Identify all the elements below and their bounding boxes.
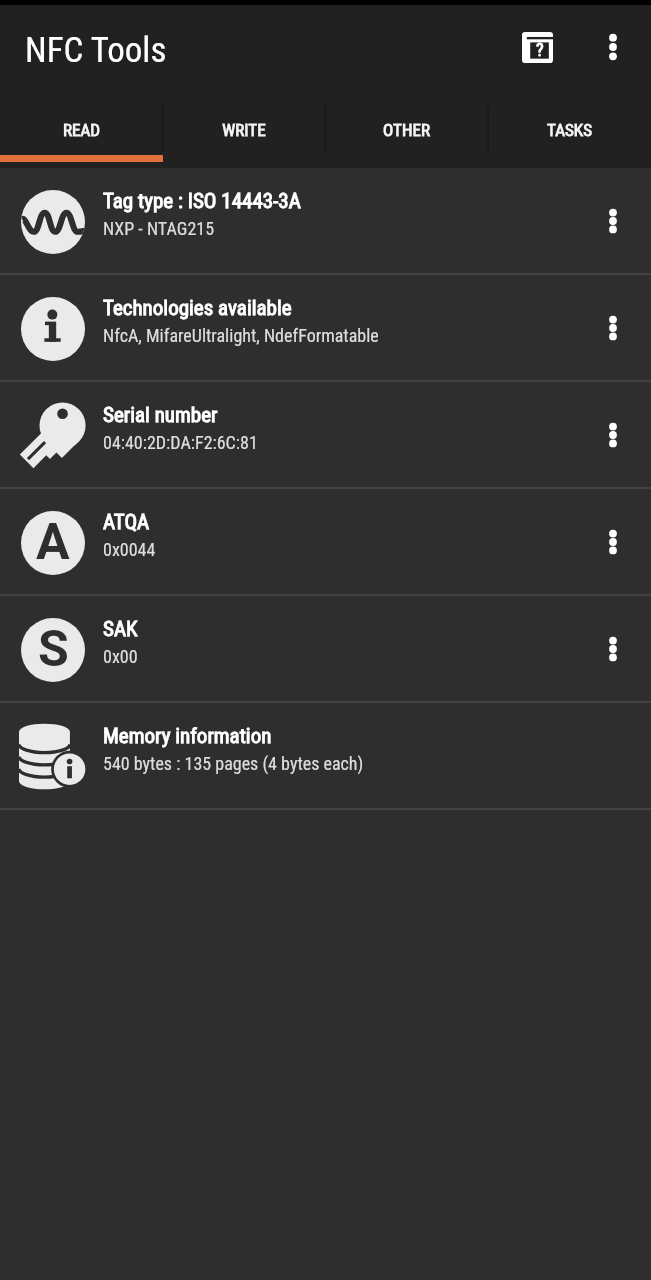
button[interactable]: Row options — [571, 382, 651, 489]
staticText: Memory information — [103, 724, 272, 749]
staticText: A — [36, 513, 70, 572]
staticText: SAK — [103, 617, 138, 642]
button[interactable]: Row options — [571, 275, 651, 382]
staticText: Serial number — [103, 403, 218, 428]
button[interactable]: S — [0, 596, 651, 703]
button[interactable]: READ — [0, 98, 162, 168]
button[interactable]: Help — [506, 16, 568, 78]
button[interactable]: A — [0, 489, 651, 596]
button[interactable]: Row options — [571, 596, 651, 703]
button[interactable]: Memory information — [0, 703, 651, 810]
staticText: WRITE — [222, 120, 266, 140]
staticText: 0x00 — [103, 646, 138, 667]
staticText: TASKS — [547, 120, 592, 140]
staticText: ? — [536, 39, 544, 60]
staticText: NXP - NTAG215 — [103, 218, 215, 239]
button[interactable]: More options — [582, 16, 644, 78]
staticText: Technologies available — [103, 296, 292, 321]
button[interactable]: OTHER — [325, 98, 488, 168]
staticText: 0x0044 — [103, 539, 156, 560]
button[interactable]: WRITE — [162, 98, 325, 168]
button[interactable]: Row options — [571, 168, 651, 275]
staticText: NfcA, MifareUltralight, NdefFormatable — [103, 325, 379, 346]
button[interactable]: Tag type : ISO 14443-3A — [0, 168, 651, 275]
button[interactable]: Technologies available — [0, 275, 651, 382]
staticText: NFC Tools — [25, 30, 167, 71]
button[interactable]: Row options — [571, 489, 651, 596]
staticText: ATQA — [103, 510, 150, 535]
staticText: Tag type : ISO 14443-3A — [103, 189, 301, 214]
staticText: 540 bytes : 135 pages (4 bytes each) — [103, 753, 364, 774]
button[interactable]: TASKS — [488, 98, 651, 168]
staticText: S — [38, 620, 69, 679]
button[interactable]: Serial number — [0, 382, 651, 489]
staticText: READ — [63, 120, 100, 140]
staticText: OTHER — [383, 120, 430, 140]
staticText: 04:40:2D:DA:F2:6C:81 — [103, 432, 258, 453]
